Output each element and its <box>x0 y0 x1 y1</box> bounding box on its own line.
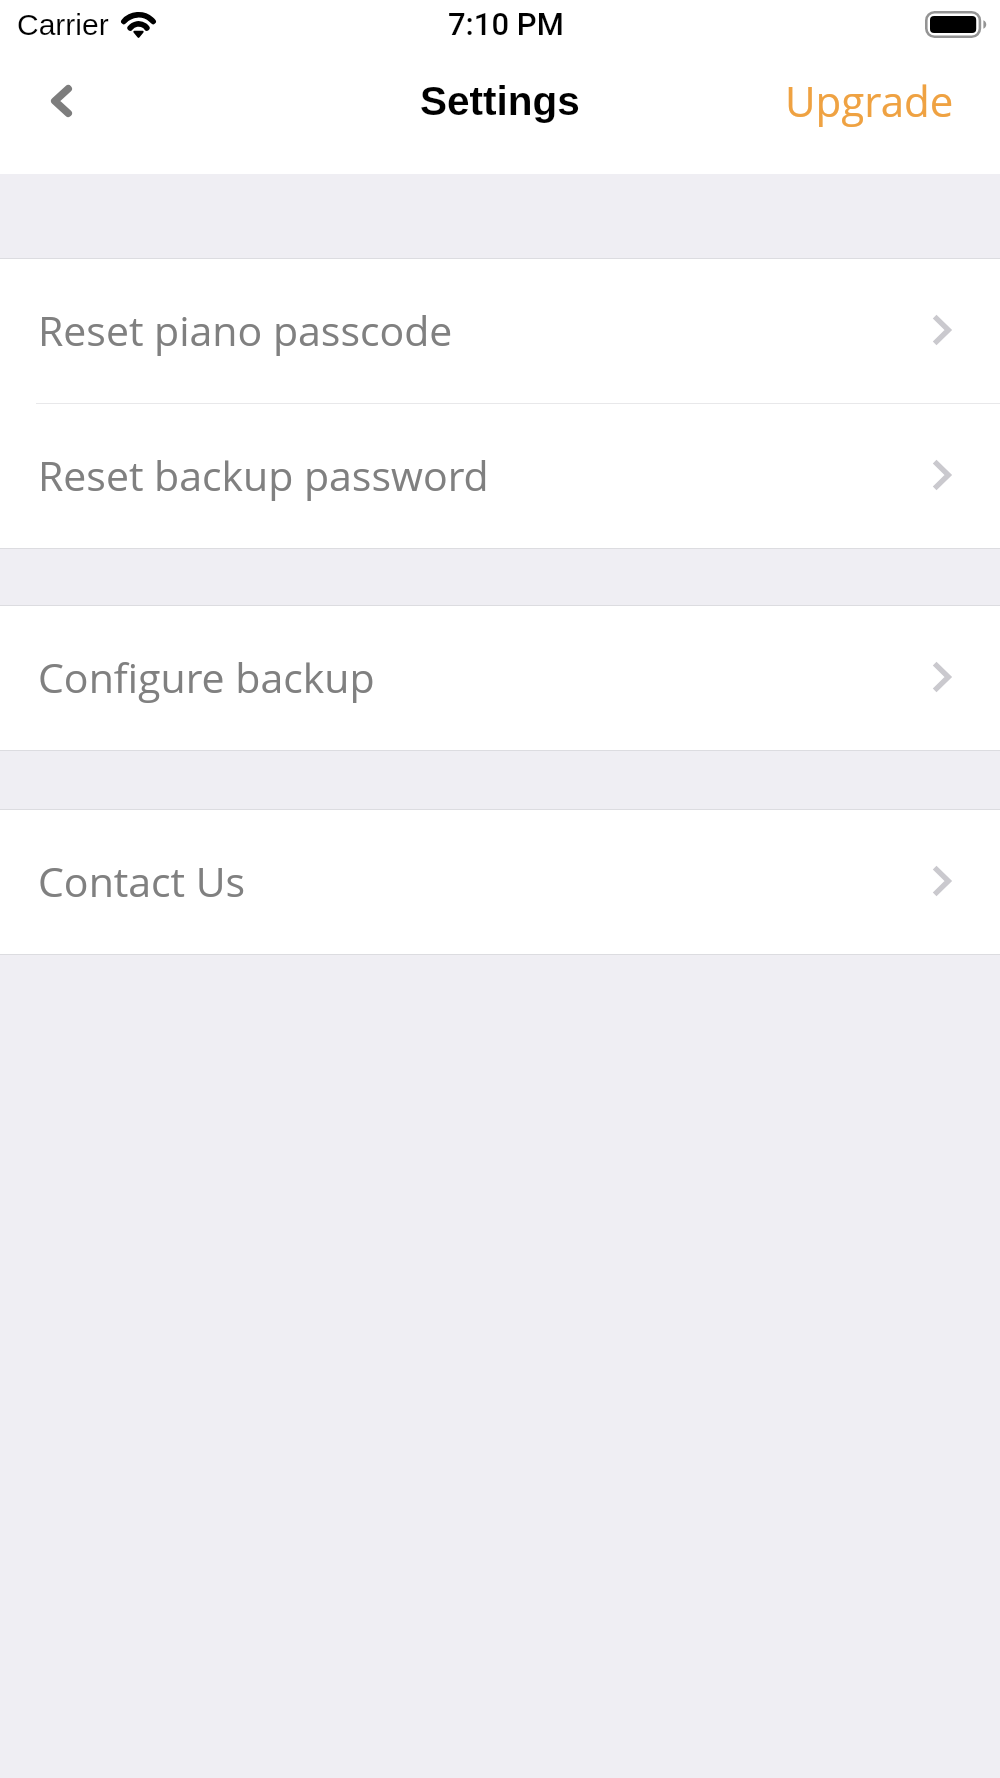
staticText: 7:10 PM <box>448 6 564 42</box>
button[interactable]: Contact Us <box>0 810 1000 954</box>
button[interactable]: Upgrade <box>761 55 1000 145</box>
staticText: Configure backup <box>38 649 375 705</box>
staticText: Upgrade <box>785 72 954 129</box>
staticText: Reset piano passcode <box>38 302 453 358</box>
button[interactable]: Reset piano passcode <box>0 259 1000 403</box>
staticText: Reset backup password <box>38 447 489 503</box>
staticText: Carrier <box>17 8 109 42</box>
button[interactable]: Configure backup <box>0 606 1000 750</box>
staticText: Contact Us <box>38 853 246 909</box>
button[interactable]: Reset backup password <box>0 404 1000 548</box>
button[interactable]: Back <box>15 55 107 147</box>
staticText: Settings <box>420 78 580 123</box>
